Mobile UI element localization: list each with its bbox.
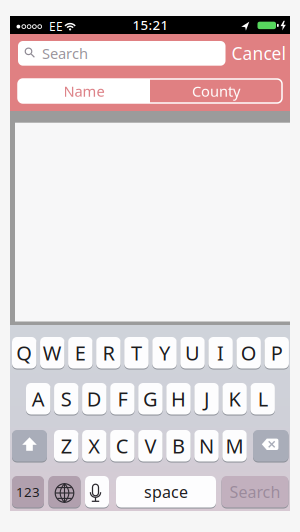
button[interactable]: V bbox=[138, 429, 163, 462]
staticText: N bbox=[199, 432, 214, 459]
button[interactable]: Search bbox=[18, 41, 225, 66]
button[interactable]: Delete bbox=[253, 429, 288, 462]
staticText: space bbox=[144, 481, 188, 502]
button[interactable]: Cancel bbox=[223, 41, 293, 66]
button[interactable]: Q bbox=[12, 336, 36, 369]
staticText: H bbox=[171, 385, 186, 412]
button[interactable]: Name bbox=[18, 79, 150, 103]
staticText: 123 bbox=[16, 483, 40, 501]
staticText: County bbox=[192, 81, 240, 101]
staticText: R bbox=[102, 339, 114, 366]
staticText: B bbox=[172, 432, 185, 459]
staticText: Search bbox=[229, 481, 280, 502]
button[interactable]: O bbox=[236, 336, 261, 369]
button[interactable]: C bbox=[110, 429, 135, 462]
staticText: 15:21 bbox=[132, 16, 168, 34]
staticText: A bbox=[32, 385, 45, 412]
button[interactable]: T bbox=[124, 336, 149, 369]
button[interactable]: I bbox=[208, 336, 233, 369]
staticText: T bbox=[131, 339, 142, 366]
staticText: Y bbox=[159, 339, 170, 366]
button[interactable]: L bbox=[250, 382, 275, 415]
staticText: X bbox=[88, 432, 100, 459]
button[interactable]: H bbox=[166, 382, 191, 415]
button[interactable]: B bbox=[166, 429, 191, 462]
staticText: D bbox=[87, 385, 102, 412]
staticText: K bbox=[229, 385, 241, 412]
button[interactable]: Dictation bbox=[85, 475, 109, 508]
button[interactable]: Y bbox=[152, 336, 177, 369]
button[interactable]: W bbox=[40, 336, 64, 369]
button[interactable]: G bbox=[138, 382, 163, 415]
staticText: U bbox=[185, 339, 200, 366]
staticText: S bbox=[61, 385, 72, 412]
button[interactable]: County bbox=[150, 79, 282, 103]
button[interactable]: Next keyboard bbox=[48, 475, 80, 508]
button[interactable]: U bbox=[180, 336, 205, 369]
staticText: G bbox=[143, 385, 158, 412]
staticText: EE bbox=[49, 18, 63, 34]
staticText: F bbox=[117, 385, 127, 412]
button[interactable]: A bbox=[26, 382, 50, 415]
button[interactable]: space bbox=[116, 475, 216, 508]
button[interactable]: P bbox=[264, 336, 289, 369]
staticText: O bbox=[241, 339, 257, 366]
staticText: W bbox=[43, 339, 62, 366]
staticText: L bbox=[258, 385, 268, 412]
button[interactable]: 123 bbox=[12, 475, 44, 508]
staticText: I bbox=[217, 339, 224, 366]
staticText: Q bbox=[16, 339, 32, 366]
button[interactable]: X bbox=[82, 429, 106, 462]
button[interactable]: Z bbox=[54, 429, 78, 462]
staticText: Name bbox=[63, 81, 104, 101]
button[interactable]: S bbox=[54, 382, 78, 415]
button[interactable]: J bbox=[194, 382, 219, 415]
button[interactable]: F bbox=[110, 382, 135, 415]
button[interactable]: N bbox=[194, 429, 219, 462]
button[interactable]: Shift bbox=[12, 429, 47, 462]
button[interactable]: R bbox=[96, 336, 121, 369]
button[interactable]: M bbox=[222, 429, 247, 462]
button[interactable]: K bbox=[222, 382, 247, 415]
button[interactable]: D bbox=[82, 382, 107, 415]
staticText: C bbox=[116, 432, 129, 459]
staticText: Cancel bbox=[231, 42, 285, 65]
staticText: Z bbox=[61, 432, 72, 459]
staticText: E bbox=[75, 339, 86, 366]
button[interactable]: E bbox=[68, 336, 93, 369]
staticText: Search bbox=[42, 44, 88, 63]
staticText: M bbox=[226, 432, 244, 459]
button[interactable]: Search bbox=[221, 475, 288, 508]
staticText: J bbox=[204, 385, 209, 412]
staticText: P bbox=[271, 339, 283, 366]
staticText: V bbox=[144, 432, 156, 459]
